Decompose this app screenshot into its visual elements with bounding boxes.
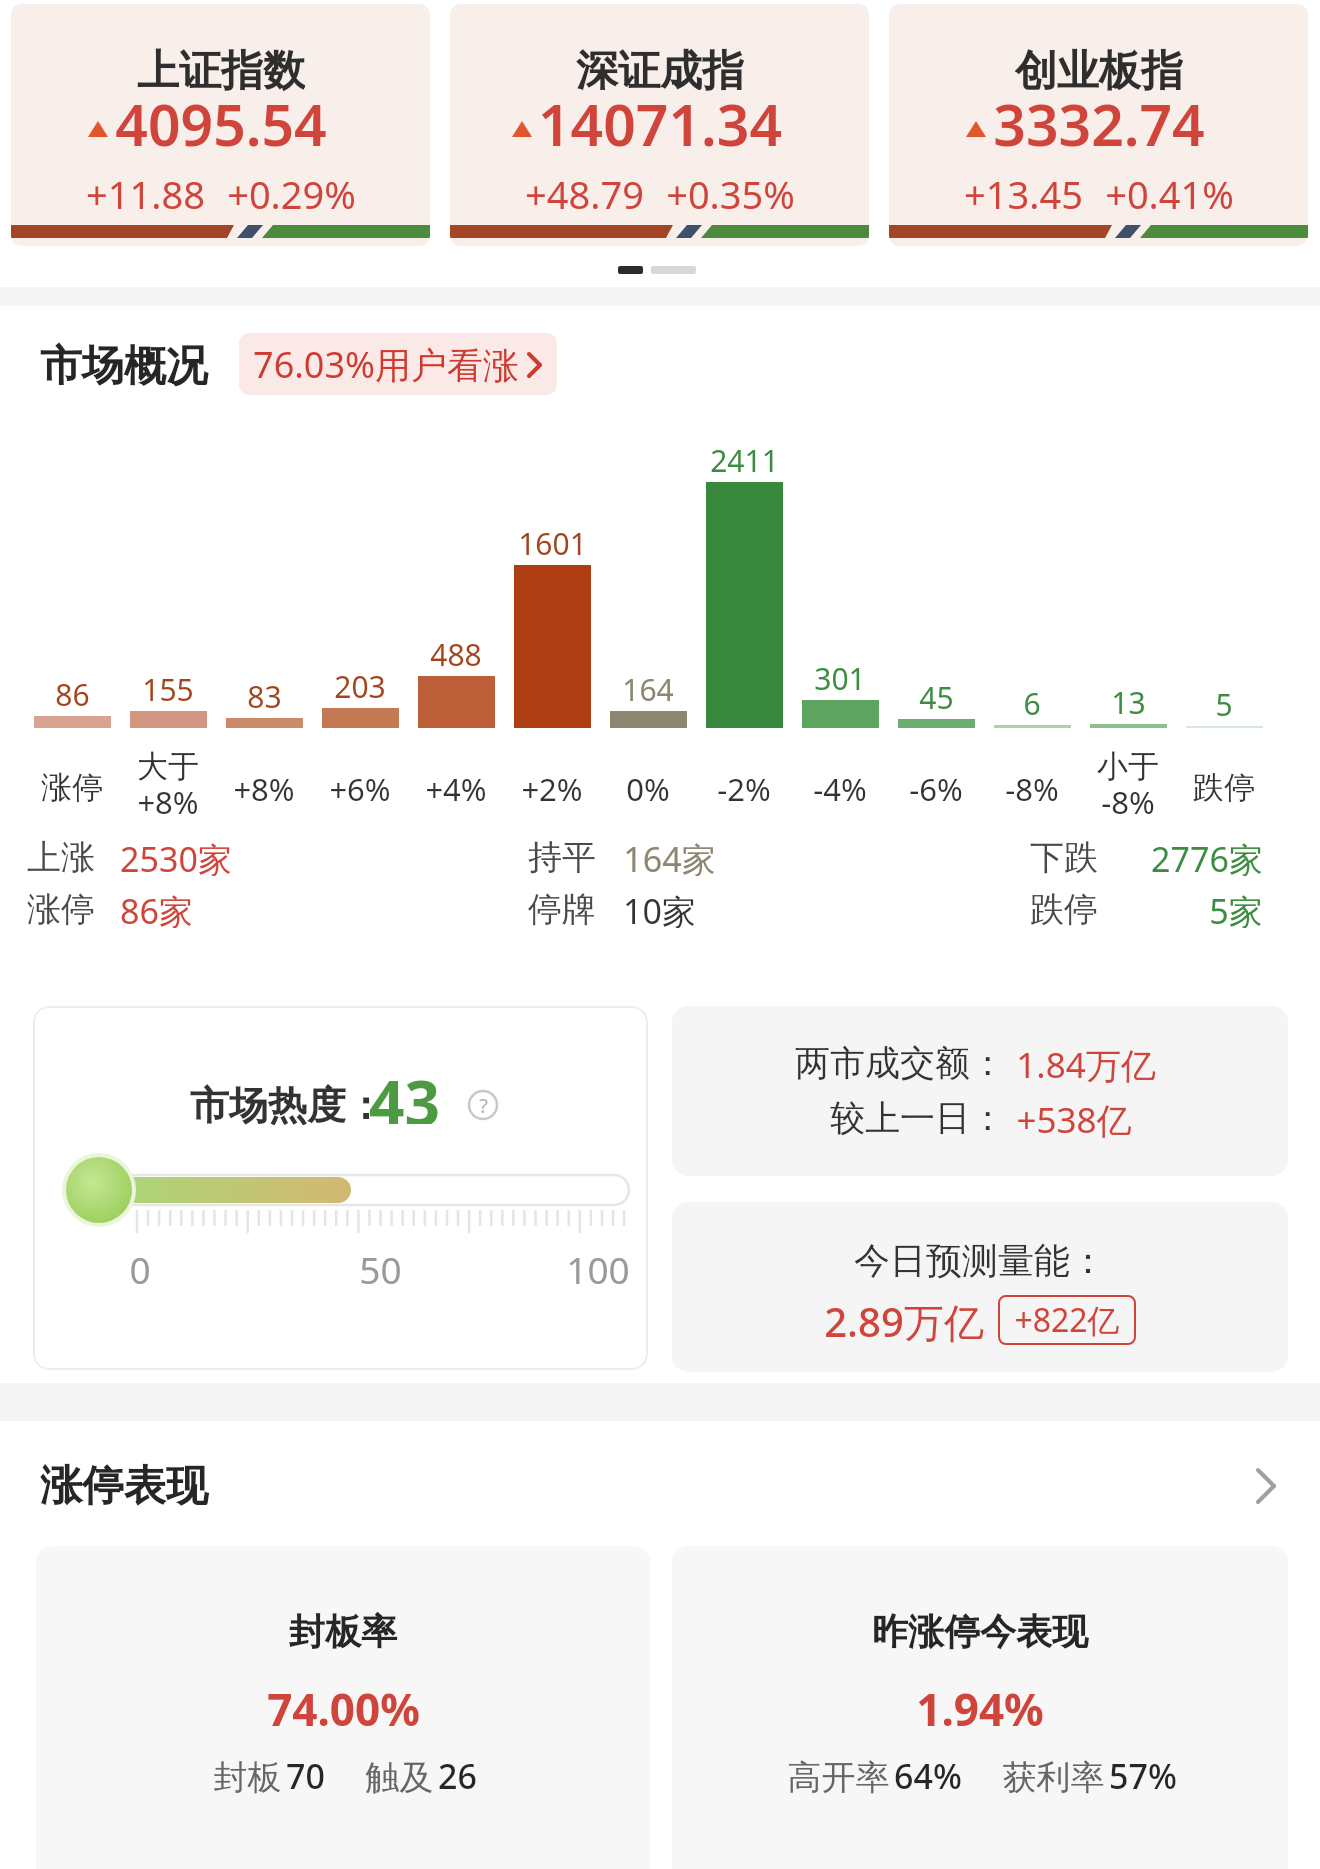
staticText: 2.89万亿 [824, 1294, 984, 1346]
button[interactable]: 昨涨停今表现 [672, 1546, 1288, 1869]
staticText: 深证成指 [576, 45, 744, 95]
staticText: +0.29% [227, 168, 356, 214]
staticText: 2530家 [120, 836, 232, 876]
staticText: 3332.74 [993, 85, 1205, 151]
staticText: +11.88 [86, 168, 205, 214]
staticText: -8% [1005, 768, 1059, 804]
staticText: 市场热度： [190, 1081, 385, 1125]
staticText: 155 [142, 669, 194, 703]
staticText: +0.41% [1105, 168, 1234, 214]
staticText: +2% [521, 768, 583, 804]
button[interactable]: 封板率 [36, 1546, 650, 1869]
staticText: 64% [894, 1753, 962, 1799]
staticText: 5 [1215, 684, 1233, 718]
staticText: +822亿 [1014, 1298, 1120, 1342]
staticText: +0.35% [666, 168, 795, 214]
staticText: 创业板指 [1015, 45, 1183, 95]
staticText: 50 [359, 1244, 402, 1288]
staticText: 488 [430, 634, 482, 668]
staticText: 跌停 [1193, 768, 1255, 804]
staticText: 43 [369, 1060, 440, 1124]
button[interactable] [1240, 1460, 1292, 1512]
staticText: 上证指数 [137, 45, 305, 95]
staticText: 今日预测量能： [854, 1238, 1106, 1282]
staticText: 100 [566, 1244, 630, 1288]
staticText: 2776家 [1151, 836, 1263, 876]
staticText: 70 [286, 1753, 325, 1799]
button[interactable]: 今日预测量能： [672, 1202, 1288, 1372]
staticText: 高开率 [783, 1753, 894, 1799]
staticText: 74.00% [267, 1679, 420, 1731]
staticText: 封板率 [289, 1609, 397, 1654]
staticText: 10家 [623, 888, 696, 928]
staticText: 跌停 [1030, 888, 1098, 928]
button[interactable]: 上证指数 [11, 4, 430, 246]
staticText: +8% [233, 768, 295, 804]
staticText: 昨涨停今表现 [872, 1609, 1088, 1654]
staticText: 涨停 [27, 888, 95, 928]
staticText: 较上一日： [830, 1096, 1005, 1140]
staticText: 86 [55, 674, 90, 708]
staticText: 两市成交额： [795, 1041, 1005, 1085]
staticText: +48.79 [525, 168, 644, 214]
staticText: 大于 +8% [137, 747, 199, 819]
staticText: 1.84万亿 [1016, 1041, 1156, 1085]
staticText: 301 [814, 658, 866, 692]
staticText: 13 [1111, 682, 1146, 716]
button[interactable]: 两市成交额： [672, 1006, 1288, 1176]
staticText: 持平 [528, 836, 596, 876]
staticText: 1601 [518, 523, 587, 557]
staticText: 获利率 [998, 1753, 1109, 1799]
staticText: 45 [919, 677, 954, 711]
staticText: 停牌 [528, 888, 596, 928]
staticText: +538亿 [1016, 1096, 1132, 1140]
staticText: -2% [717, 768, 771, 804]
staticText: 市场概况 [40, 340, 208, 393]
staticText: +13.45 [964, 168, 1083, 214]
staticText: 下跌 [1030, 836, 1098, 876]
staticText: 封板 [209, 1753, 286, 1799]
staticText: 4095.54 [115, 85, 327, 151]
staticText: 203 [334, 666, 386, 700]
button[interactable]: 市场热度： [33, 1006, 648, 1370]
staticText: 164家 [623, 836, 716, 876]
staticText: 164 [622, 669, 674, 703]
staticText: 5家 [1209, 888, 1263, 928]
staticText: ? [479, 1092, 488, 1119]
staticText: 86家 [120, 888, 193, 928]
button[interactable]: 76.03%用户看涨 [239, 333, 557, 395]
staticText: 57% [1109, 1753, 1177, 1799]
staticText: 83 [247, 676, 282, 710]
staticText: 76.03%用户看涨 [253, 340, 519, 389]
staticText: 涨停表现 [40, 1460, 208, 1513]
staticText: 上涨 [27, 836, 95, 876]
staticText: 小于 -8% [1097, 747, 1159, 819]
button[interactable]: 深证成指 [450, 4, 869, 246]
staticText: 0% [626, 768, 670, 804]
staticText: 6 [1023, 683, 1041, 717]
staticText: 触及 [361, 1753, 438, 1799]
staticText: 26 [438, 1753, 477, 1799]
staticText: 1.94% [916, 1679, 1044, 1731]
staticText: -4% [813, 768, 867, 804]
staticText: +4% [425, 768, 487, 804]
staticText: 涨停 [41, 768, 103, 804]
staticText: 2411 [710, 440, 779, 474]
staticText: -6% [909, 768, 963, 804]
button[interactable]: 创业板指 [889, 4, 1308, 246]
staticText: 0 [129, 1244, 151, 1288]
staticText: +6% [329, 768, 391, 804]
staticText: 14071.34 [538, 85, 782, 151]
